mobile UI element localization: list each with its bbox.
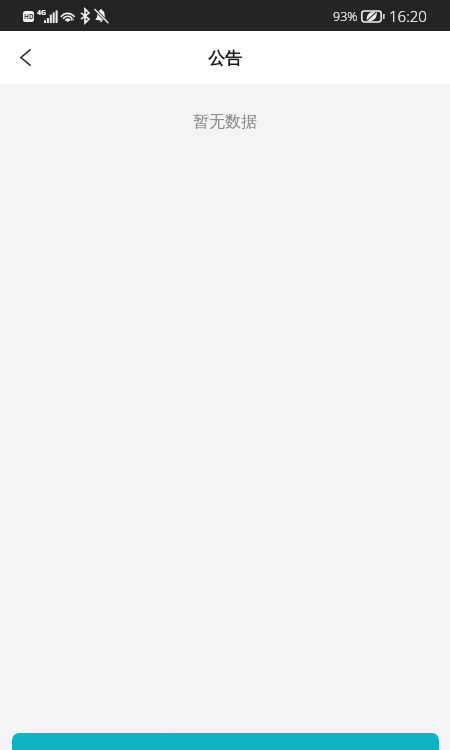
staticText: 16:20 [389,6,427,26]
staticText: 93% [333,8,358,25]
staticText: 4G [37,8,47,18]
staticText: 小玩意儿 · 11WYX.COM [112,712,339,741]
staticText: HD [24,12,34,21]
staticText: 暂无数据 [0,112,450,132]
staticText: 公告 [208,48,242,69]
button[interactable]: Back [0,31,48,84]
button[interactable]: Primary action [12,733,439,750]
